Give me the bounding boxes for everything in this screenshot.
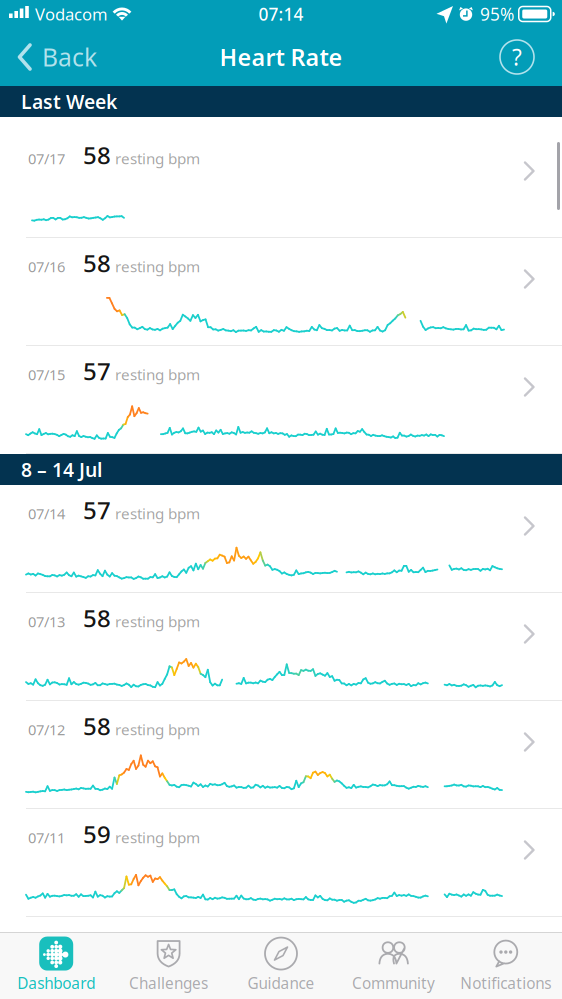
button[interactable]: 07/12: [0, 701, 562, 809]
staticText: 57: [83, 494, 111, 526]
staticText: 58: [83, 602, 111, 634]
staticText: Challenges: [129, 973, 208, 993]
button[interactable]: Challenges: [112, 932, 225, 999]
button[interactable]: 07/16: [0, 238, 562, 346]
staticText: 57: [83, 355, 111, 387]
staticText: 95%: [480, 2, 514, 26]
staticText: 07/16: [28, 257, 65, 277]
staticText: resting bpm: [115, 719, 200, 740]
staticText: 07/13: [28, 612, 65, 632]
staticText: ?: [512, 42, 522, 72]
button[interactable]: 07/13: [0, 593, 562, 701]
staticText: resting bpm: [115, 503, 200, 524]
staticText: Dashboard: [17, 973, 95, 993]
button[interactable]: Help: [486, 28, 548, 86]
staticText: resting bpm: [115, 256, 200, 277]
staticText: 07/17: [28, 149, 65, 169]
staticText: 58: [83, 710, 111, 742]
staticText: Guidance: [247, 973, 314, 993]
staticText: Back: [42, 40, 97, 74]
staticText: resting bpm: [115, 611, 200, 632]
staticText: 58: [83, 247, 111, 279]
staticText: 07:14: [258, 2, 303, 25]
staticText: resting bpm: [115, 148, 200, 169]
staticText: Vodacom: [35, 3, 108, 25]
staticText: Last Week: [21, 88, 117, 115]
button[interactable]: 07/14: [0, 485, 562, 593]
staticText: resting bpm: [115, 827, 200, 848]
staticText: 8 – 14 Jul: [21, 456, 102, 483]
button[interactable]: Back: [0, 28, 107, 86]
staticText: Community: [352, 973, 435, 993]
staticText: 07/14: [28, 504, 65, 524]
staticText: 07/11: [28, 828, 65, 848]
staticText: 59: [83, 818, 111, 850]
button[interactable]: Community: [337, 932, 450, 999]
button[interactable]: Dashboard: [0, 932, 112, 999]
button[interactable]: 07/11: [0, 809, 562, 917]
button[interactable]: 07/15: [0, 346, 562, 454]
button[interactable]: Guidance: [225, 932, 337, 999]
staticText: resting bpm: [115, 364, 200, 385]
staticText: 58: [83, 139, 111, 171]
staticText: 07/12: [28, 720, 65, 740]
staticText: Heart Rate: [219, 41, 342, 73]
staticText: 07/15: [28, 365, 65, 385]
button[interactable]: 07/17: [0, 130, 562, 238]
button[interactable]: Notifications: [450, 932, 562, 999]
staticText: Notifications: [460, 973, 551, 993]
